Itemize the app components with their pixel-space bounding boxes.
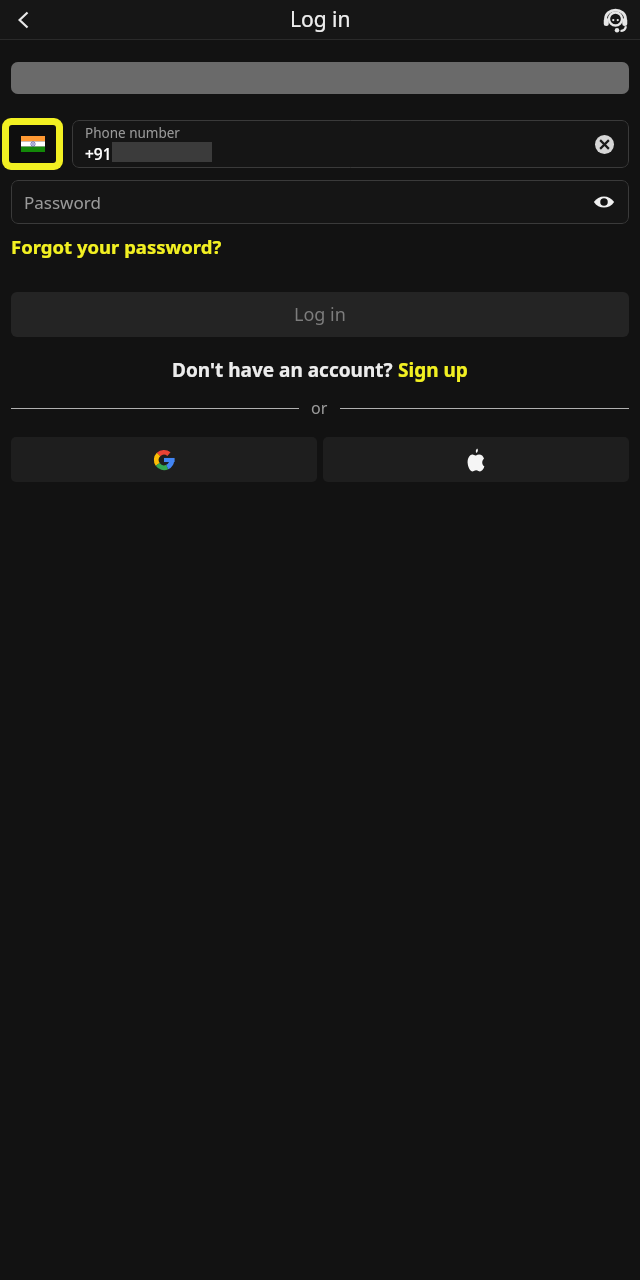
staticText: Phone number <box>85 124 180 142</box>
button[interactable]: Log in <box>11 292 629 337</box>
staticText: Log in <box>294 302 346 327</box>
button[interactable]: Select country code <box>2 118 63 170</box>
staticText: or <box>311 397 328 419</box>
button[interactable]: Password <box>11 180 629 224</box>
staticText: Log in <box>290 5 351 34</box>
button[interactable]: Forgot your password? <box>11 234 222 259</box>
button[interactable]: Sign in with Apple <box>323 437 629 482</box>
staticText: Forgot your password? <box>11 234 222 259</box>
button[interactable]: Back <box>4 0 44 39</box>
staticText: Don't have an account? <box>172 357 398 383</box>
button[interactable]: Show password <box>589 187 619 217</box>
button[interactable]: Sign in with Google <box>11 437 317 482</box>
button[interactable]: Clear phone number <box>589 129 619 159</box>
button[interactable]: Phone number <box>72 120 629 168</box>
staticText: Password <box>24 191 101 214</box>
button[interactable]: Sign up <box>398 357 468 383</box>
staticText: +91 <box>85 143 112 164</box>
button[interactable]: Customer support <box>594 0 636 39</box>
staticText: Sign up <box>398 357 468 383</box>
